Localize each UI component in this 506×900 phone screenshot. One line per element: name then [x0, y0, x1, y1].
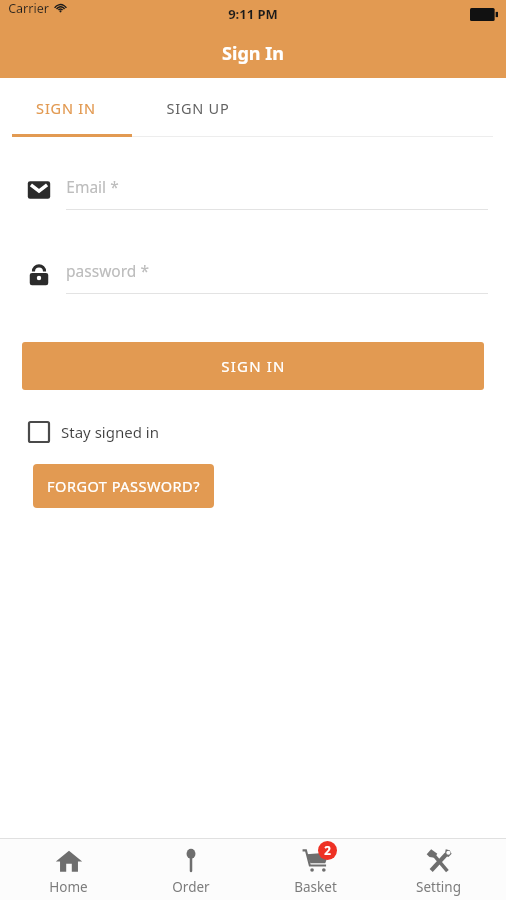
staticText: Home [49, 878, 88, 896]
staticText: SIGN IN [221, 356, 286, 376]
button[interactable]: Home [13, 838, 123, 900]
button[interactable]: SIGN UP [132, 78, 264, 138]
staticText: SIGN UP [166, 98, 230, 118]
button[interactable]: Email * [0, 162, 506, 218]
button[interactable]: FORGOT PASSWORD? [33, 464, 214, 508]
button[interactable]: Order [136, 838, 246, 900]
button[interactable]: SIGN IN [22, 342, 484, 390]
staticText: Email * [66, 176, 119, 197]
button[interactable]: Setting [383, 838, 493, 900]
staticText: Sign In [222, 41, 284, 66]
staticText: Carrier [8, 0, 49, 17]
staticText: 9:11 PM [228, 5, 278, 23]
staticText: Setting [416, 878, 461, 896]
staticText: Order [172, 878, 210, 896]
button[interactable]: Stay signed in [28, 414, 159, 450]
button[interactable]: password * [0, 246, 506, 302]
staticText: SIGN IN [36, 98, 96, 118]
staticText: password * [66, 260, 149, 281]
staticText: 2 [324, 843, 331, 859]
staticText: Stay signed in [61, 422, 159, 442]
button[interactable]: Basket [260, 838, 370, 900]
staticText: FORGOT PASSWORD? [47, 476, 200, 496]
button[interactable]: SIGN IN [0, 78, 132, 138]
staticText: Basket [294, 878, 337, 896]
